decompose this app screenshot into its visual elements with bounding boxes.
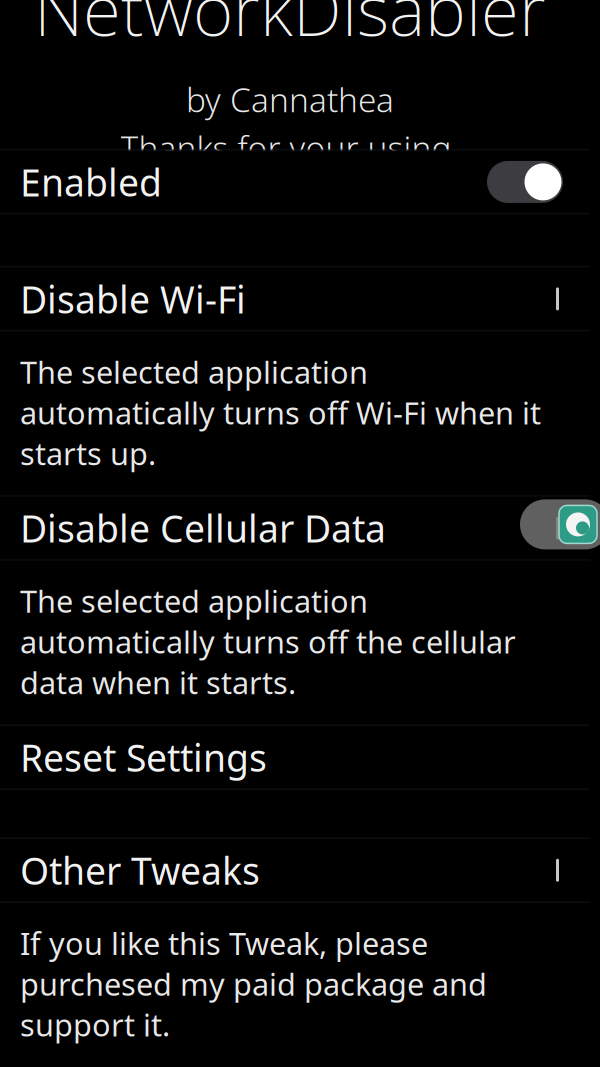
- button[interactable]: Enabled: [0, 150, 590, 213]
- button[interactable]: Other Tweaks: [0, 839, 590, 902]
- button[interactable]: Reset Settings: [0, 726, 590, 789]
- button[interactable]: AssistiveTouch: [520, 499, 600, 549]
- staticText: Thanks for your using.: [120, 125, 459, 170]
- staticText: The selected application automatically t…: [20, 351, 541, 474]
- staticText: If you like this Tweak, please purchesed…: [20, 923, 487, 1045]
- staticText: Disable Cellular Data: [20, 503, 386, 553]
- staticText: NetworkDisabler: [34, 0, 546, 55]
- staticText: Other Tweaks: [20, 845, 260, 895]
- button[interactable]: Disable Wi-Fi: [0, 267, 590, 330]
- staticText: by Cannathea: [186, 77, 394, 121]
- staticText: Disable Wi-Fi: [20, 274, 246, 324]
- button[interactable]: Disable Cellular Data: [0, 497, 590, 560]
- staticText: Enabled: [20, 157, 162, 207]
- staticText: The selected application automatically t…: [20, 581, 516, 703]
- staticText: Reset Settings: [20, 732, 267, 782]
